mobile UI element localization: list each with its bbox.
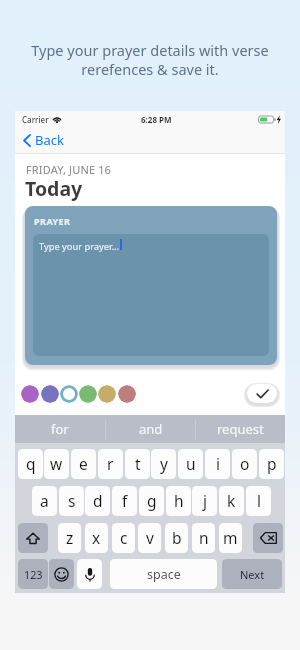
staticText: Today bbox=[25, 175, 83, 202]
staticText: f bbox=[122, 490, 128, 511]
staticText: and bbox=[139, 420, 163, 438]
button[interactable]: j bbox=[192, 486, 217, 516]
button[interactable]: l bbox=[246, 486, 271, 516]
staticText: 123 bbox=[24, 567, 43, 582]
button[interactable]: b bbox=[165, 523, 188, 553]
button[interactable]: Next bbox=[222, 559, 282, 589]
staticText: s bbox=[68, 490, 76, 511]
button[interactable]: r bbox=[98, 449, 123, 479]
staticText: for bbox=[51, 420, 69, 438]
staticText: a bbox=[40, 490, 49, 511]
staticText: v bbox=[146, 527, 154, 548]
button[interactable]: x bbox=[85, 523, 108, 553]
button[interactable]: m bbox=[219, 523, 242, 553]
button[interactable]: n bbox=[192, 523, 215, 553]
button[interactable]: Emoji bbox=[49, 559, 74, 589]
staticText: u bbox=[186, 453, 196, 474]
button[interactable]: c bbox=[112, 523, 135, 553]
staticText: q bbox=[26, 453, 36, 474]
button[interactable]: Colour 6 bbox=[118, 385, 136, 403]
staticText: z bbox=[66, 527, 74, 548]
button[interactable]: for bbox=[15, 415, 105, 443]
button[interactable]: o bbox=[232, 449, 257, 479]
button[interactable]: PRAYER bbox=[25, 206, 277, 365]
staticText: y bbox=[160, 453, 168, 474]
staticText: e bbox=[79, 453, 88, 474]
staticText: j bbox=[203, 490, 207, 511]
button[interactable]: i bbox=[205, 449, 230, 479]
staticText: m bbox=[223, 527, 238, 548]
button[interactable]: p bbox=[259, 449, 284, 479]
staticText: PRAYER bbox=[34, 215, 71, 227]
staticText: Type your prayer... bbox=[39, 240, 119, 253]
staticText: g bbox=[147, 490, 157, 511]
staticText: o bbox=[240, 453, 250, 474]
button[interactable]: Colour 1 bbox=[21, 385, 39, 403]
staticText: t bbox=[135, 453, 141, 474]
button[interactable]: space bbox=[110, 559, 217, 589]
button[interactable]: d bbox=[85, 486, 110, 516]
button[interactable]: Colour 5 bbox=[98, 385, 116, 403]
button[interactable]: Colour 2 bbox=[41, 385, 59, 403]
staticText: Type your prayer details with verse rere… bbox=[31, 40, 269, 79]
button[interactable]: u bbox=[178, 449, 203, 479]
button[interactable]: y bbox=[151, 449, 176, 479]
button[interactable]: t bbox=[125, 449, 150, 479]
button[interactable]: k bbox=[219, 486, 244, 516]
button[interactable]: 123 bbox=[18, 559, 48, 589]
staticText: 6:28 PM bbox=[141, 114, 172, 125]
staticText: Back bbox=[35, 131, 64, 149]
staticText: p bbox=[267, 453, 277, 474]
staticText: Carrier bbox=[22, 114, 49, 125]
button[interactable]: Colour 3 bbox=[60, 385, 78, 403]
staticText: request bbox=[217, 420, 264, 438]
staticText: c bbox=[120, 527, 128, 548]
staticText: x bbox=[92, 527, 101, 548]
button[interactable]: q bbox=[18, 449, 43, 479]
staticText: h bbox=[174, 490, 184, 511]
button[interactable]: s bbox=[59, 486, 84, 516]
button[interactable]: v bbox=[138, 523, 161, 553]
button[interactable]: Save prayer bbox=[247, 384, 277, 403]
button[interactable]: Colour 4 bbox=[79, 385, 97, 403]
button[interactable]: Back bbox=[23, 127, 64, 153]
button[interactable]: e bbox=[71, 449, 96, 479]
button[interactable]: Dictate bbox=[77, 559, 102, 589]
staticText: Next bbox=[240, 567, 265, 582]
staticText: i bbox=[216, 453, 220, 474]
button[interactable]: z bbox=[58, 523, 81, 553]
button[interactable]: Delete bbox=[253, 523, 283, 553]
button[interactable]: and bbox=[106, 415, 195, 443]
staticText: n bbox=[199, 527, 209, 548]
button[interactable]: h bbox=[166, 486, 191, 516]
staticText: r bbox=[107, 453, 114, 474]
button[interactable]: f bbox=[112, 486, 137, 516]
button[interactable]: request bbox=[196, 415, 285, 443]
staticText: b bbox=[172, 527, 182, 548]
button[interactable]: g bbox=[139, 486, 164, 516]
staticText: space bbox=[147, 566, 181, 583]
staticText: d bbox=[93, 490, 103, 511]
staticText: l bbox=[257, 490, 261, 511]
staticText: k bbox=[227, 490, 236, 511]
button[interactable]: Shift bbox=[18, 523, 48, 553]
button[interactable]: a bbox=[32, 486, 57, 516]
staticText: FRIDAY, JUNE 16 bbox=[26, 162, 112, 177]
staticText: w bbox=[50, 453, 63, 474]
button[interactable]: w bbox=[44, 449, 69, 479]
